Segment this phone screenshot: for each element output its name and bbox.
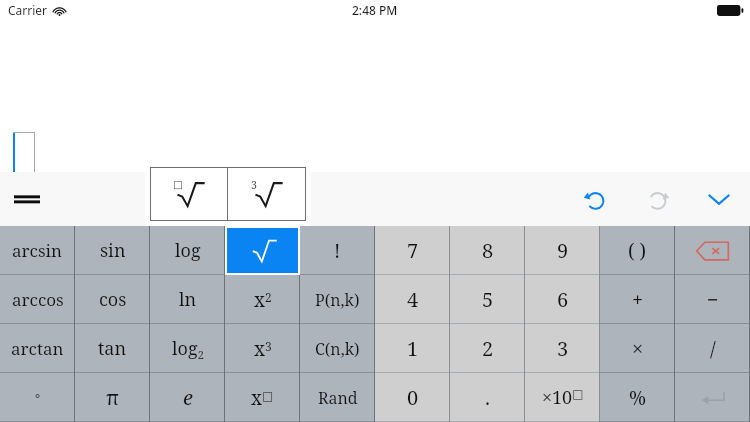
button[interactable]: − — [675, 275, 750, 324]
button[interactable]: 5 — [450, 275, 525, 324]
staticText: P(n,k) — [315, 289, 360, 311]
button[interactable]: x□ — [225, 373, 300, 422]
button[interactable]: Cube root — [228, 167, 305, 221]
staticText: □ — [173, 178, 183, 190]
staticText: 9 — [557, 237, 569, 264]
button[interactable]: x2 — [225, 275, 300, 324]
staticText: C(n,k) — [315, 338, 360, 360]
staticText: ln — [179, 287, 197, 312]
button[interactable]: log2 — [150, 324, 225, 373]
button[interactable]: ln — [150, 275, 225, 324]
staticText: Carrier — [8, 2, 48, 18]
staticText: 3 — [251, 178, 257, 192]
staticText: 5 — [482, 286, 494, 313]
button[interactable]: 9 — [525, 226, 600, 275]
staticText: 3 — [557, 335, 569, 362]
staticText: arccos — [12, 288, 64, 311]
staticText: / — [710, 335, 716, 362]
button[interactable]: 3 — [525, 324, 600, 373]
button[interactable]: Enter — [675, 373, 750, 422]
staticText: ° — [35, 389, 41, 407]
button[interactable]: arccos — [0, 275, 75, 324]
staticText: ( ) — [628, 238, 647, 264]
button[interactable]: 4 — [375, 275, 450, 324]
button[interactable]: ( ) — [600, 226, 675, 275]
button[interactable]: ° — [0, 373, 75, 422]
button[interactable]: sin — [75, 226, 150, 275]
staticText: tan — [98, 336, 127, 361]
staticText: x3 — [254, 336, 272, 362]
button[interactable]: P(n,k) — [300, 275, 375, 324]
staticText: . — [485, 384, 490, 411]
staticText: arctan — [11, 337, 64, 360]
staticText: x□ — [251, 385, 274, 411]
button[interactable]: log — [150, 226, 225, 275]
staticText: cos — [99, 287, 127, 312]
button[interactable]: ×10□ — [525, 373, 600, 422]
button[interactable]: Rand — [300, 373, 375, 422]
button[interactable]: ! — [300, 226, 375, 275]
button[interactable]: Square root — [225, 226, 300, 275]
staticText: % — [629, 385, 647, 411]
button[interactable]: . — [450, 373, 525, 422]
button[interactable]: % — [600, 373, 675, 422]
staticText: + — [632, 286, 644, 313]
button[interactable]: 6 — [525, 275, 600, 324]
button[interactable]: Backspace — [675, 226, 750, 275]
button[interactable]: 2 — [450, 324, 525, 373]
button[interactable]: x3 — [225, 324, 300, 373]
staticText: Rand — [318, 387, 358, 409]
staticText: ! — [334, 238, 341, 264]
staticText: log — [175, 238, 201, 263]
staticText: 2:48 PM — [352, 2, 398, 18]
button[interactable]: Redo — [634, 175, 680, 223]
button[interactable]: + — [600, 275, 675, 324]
button[interactable]: cos — [75, 275, 150, 324]
button[interactable]: / — [675, 324, 750, 373]
button[interactable]: arctan — [0, 324, 75, 373]
staticText: 6 — [557, 286, 569, 313]
button[interactable]: C(n,k) — [300, 324, 375, 373]
button[interactable]: 7 — [375, 226, 450, 275]
staticText: log2 — [172, 336, 204, 362]
button[interactable]: arcsin — [0, 226, 75, 275]
staticText: e — [183, 384, 193, 411]
staticText: x2 — [254, 287, 272, 313]
button[interactable]: 0 — [375, 373, 450, 422]
staticText: 4 — [407, 286, 419, 313]
button[interactable]: e — [150, 373, 225, 422]
staticText: arcsin — [12, 239, 63, 262]
button[interactable]: Hide keyboard — [696, 175, 742, 223]
button[interactable]: Undo — [572, 175, 618, 223]
staticText: 8 — [482, 237, 494, 264]
staticText: π — [106, 384, 119, 411]
staticText: 7 — [407, 237, 419, 264]
button[interactable]: π — [75, 373, 150, 422]
staticText: 1 — [407, 335, 419, 362]
button[interactable]: Menu — [0, 172, 54, 226]
staticText: ×10□ — [542, 385, 584, 410]
staticText: × — [632, 335, 644, 362]
staticText: − — [707, 286, 719, 313]
staticText: sin — [100, 238, 126, 263]
button[interactable]: 8 — [450, 226, 525, 275]
staticText: 0 — [407, 384, 419, 411]
button[interactable]: Nth root — [150, 167, 227, 221]
button[interactable]: 1 — [375, 324, 450, 373]
button[interactable]: × — [600, 324, 675, 373]
button[interactable]: tan — [75, 324, 150, 373]
staticText: 2 — [482, 335, 494, 362]
